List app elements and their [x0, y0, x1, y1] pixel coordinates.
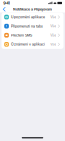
button[interactable]: Oznámení v aplikaci: [1, 40, 63, 49]
staticText: Notifikace a Připojování: [13, 7, 52, 11]
button[interactable]: Back: [0, 6, 9, 12]
staticText: Připomenutí na tabs: [11, 24, 43, 28]
staticText: Vše: [50, 24, 56, 28]
staticText: Vše: [50, 33, 56, 37]
staticText: Upozornění aplikace: [11, 15, 45, 19]
staticText: Oznámení v aplikaci: [11, 42, 45, 46]
button[interactable]: Přečtení SMS: [1, 31, 63, 40]
staticText: 9:41: [3, 1, 10, 5]
staticText: Vše: [50, 15, 56, 19]
button[interactable]: Upozornění aplikace: [1, 12, 63, 22]
staticText: Přečtení SMS: [11, 33, 32, 37]
button[interactable]: Připomenutí na tabs: [1, 22, 63, 31]
staticText: Vše: [50, 42, 56, 46]
